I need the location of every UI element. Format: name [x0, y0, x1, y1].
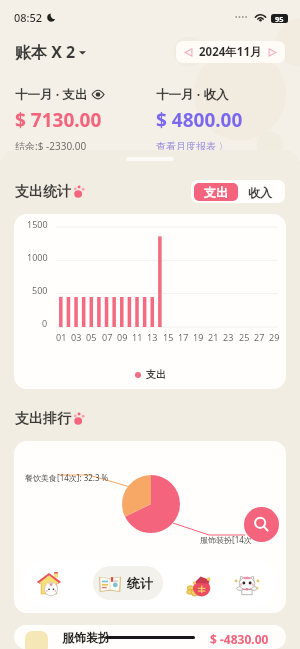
staticText: 27 — [254, 331, 265, 343]
staticText: 十一月 · 收入 — [156, 86, 229, 103]
staticText: 500 — [32, 284, 48, 296]
staticText: 05 — [86, 331, 97, 343]
staticText: 服饰装扮[14次 — [200, 534, 252, 545]
staticText: 29 — [269, 331, 280, 343]
button[interactable]: Home — [34, 568, 64, 598]
button[interactable]: Search — [244, 507, 279, 542]
staticText: 支出 — [204, 185, 228, 200]
button[interactable]: Next month — [268, 48, 277, 57]
staticText: 统计 — [127, 575, 153, 591]
staticText: 查看月度报表 〉 — [156, 139, 229, 152]
button[interactable]: 收入 — [238, 183, 282, 201]
button[interactable]: 支出 — [194, 183, 238, 201]
staticText: 支出统计 — [15, 183, 71, 201]
staticText: 餐饮美食[14次]: 32.3 % — [25, 472, 109, 483]
button[interactable]: Previous month — [184, 48, 193, 57]
staticText: 13 — [147, 331, 158, 343]
button[interactable]: 查看月度报表 〉 — [156, 139, 229, 152]
staticText: 01 — [56, 331, 67, 343]
staticText: 1500 — [27, 218, 48, 230]
staticText: 15 — [163, 331, 174, 343]
staticText: 0 — [42, 317, 48, 329]
staticText: $ -4830.00 — [210, 631, 269, 647]
button[interactable]: 账本 X 2 — [15, 41, 86, 63]
button[interactable]: Previous month — [176, 41, 285, 63]
staticText: 11 — [132, 331, 143, 343]
button[interactable]: Profile — [232, 568, 262, 598]
button[interactable]: Budget — [184, 569, 214, 599]
staticText: 结余:$ -2330.00 — [15, 139, 87, 152]
staticText: 支出排行 — [15, 410, 71, 428]
staticText: 19 — [193, 331, 204, 343]
button[interactable]: Toggle visibility — [92, 90, 104, 99]
staticText: 09 — [117, 331, 128, 343]
staticText: 服饰装扮 — [62, 630, 110, 645]
staticText: $ 7130.00 — [15, 107, 102, 133]
staticText: 收入 — [248, 185, 272, 200]
staticText: 03 — [71, 331, 82, 343]
button[interactable]: 服饰装扮 — [14, 625, 286, 649]
staticText: 1000 — [27, 251, 48, 263]
staticText: 2024年11月 — [199, 44, 262, 60]
staticText: 账本 X 2 — [15, 41, 76, 63]
staticText: 23 — [223, 331, 234, 343]
staticText: 17 — [178, 331, 189, 343]
staticText: 25 — [239, 331, 250, 343]
staticText: 08:52 — [14, 10, 43, 25]
staticText: 95 — [275, 14, 284, 23]
staticText: 十一月 · 支出 — [15, 86, 88, 103]
button[interactable]: 统计 — [93, 566, 163, 600]
staticText: 21 — [208, 331, 219, 343]
staticText: 支出 — [146, 368, 166, 381]
staticText: $ 4800.00 — [156, 107, 243, 133]
staticText: 07 — [102, 331, 113, 343]
